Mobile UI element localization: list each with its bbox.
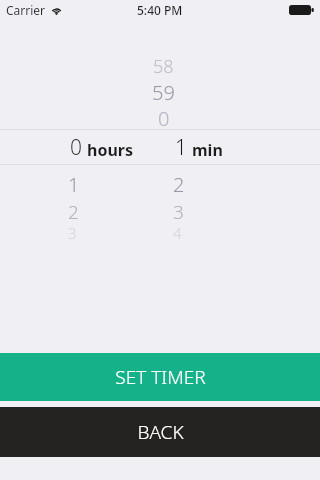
staticText: 1 bbox=[175, 133, 187, 162]
staticText: 3 bbox=[68, 223, 77, 241]
staticText: hours bbox=[87, 139, 133, 161]
staticText: 5:40 PM bbox=[137, 2, 183, 18]
staticText: 0 bbox=[158, 105, 170, 129]
button[interactable]: 2 bbox=[173, 165, 233, 241]
staticText: SET TIMER bbox=[115, 364, 206, 390]
staticText: 4 bbox=[173, 223, 182, 241]
staticText: 2 bbox=[68, 199, 79, 221]
staticText: min bbox=[192, 139, 223, 161]
button[interactable]: BACK bbox=[0, 407, 320, 457]
button[interactable]: 1 bbox=[68, 165, 128, 241]
staticText: 2 bbox=[173, 171, 185, 195]
staticText: BACK bbox=[137, 419, 184, 445]
button[interactable]: SET TIMER bbox=[0, 353, 320, 401]
staticText: 58 bbox=[153, 54, 174, 76]
staticText: 3 bbox=[173, 199, 184, 221]
staticText: 1 bbox=[68, 171, 80, 195]
staticText: 59 bbox=[152, 79, 175, 103]
button[interactable]: 0 bbox=[70, 133, 133, 162]
staticText: Carrier bbox=[6, 2, 46, 18]
button[interactable]: 1 bbox=[175, 133, 223, 162]
staticText: 0 bbox=[70, 133, 82, 162]
